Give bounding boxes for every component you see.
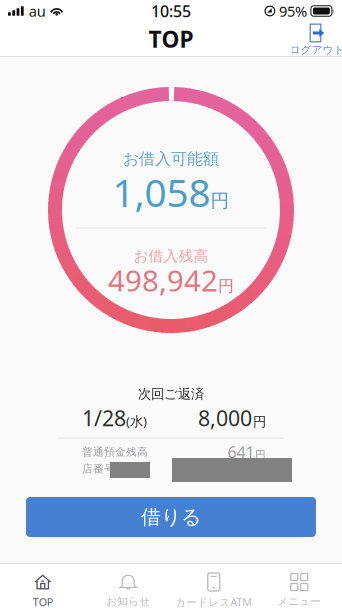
staticText: 円 xyxy=(218,276,234,296)
staticText: お借入可能額 xyxy=(123,149,219,169)
staticText: 円 xyxy=(210,189,229,212)
button[interactable]: メニュー xyxy=(256,574,342,608)
staticText: au xyxy=(29,1,46,21)
staticText: ログアウト xyxy=(289,43,342,56)
staticText: メニュー xyxy=(277,595,321,608)
staticText: 1,058 xyxy=(112,166,210,218)
staticText: 1/28 xyxy=(82,404,126,432)
staticText: お知らせ xyxy=(106,595,150,608)
staticText: TOP xyxy=(148,24,193,54)
staticText: 95% xyxy=(279,1,307,21)
staticText: 円 xyxy=(253,414,266,430)
staticText: 641 xyxy=(227,441,254,463)
staticText: 498,942 xyxy=(108,260,218,299)
staticText: TOP xyxy=(33,595,53,608)
staticText: 普通預金残高 xyxy=(82,445,148,458)
staticText: 8,000 xyxy=(198,404,252,432)
staticText: 店番号 xyxy=(82,462,115,475)
staticText: 10:55 xyxy=(151,0,191,22)
staticText: 円 xyxy=(255,448,266,461)
staticText: お借入残高 xyxy=(133,247,208,265)
staticText: (水) xyxy=(126,412,147,430)
staticText: 次回ご返済 xyxy=(138,386,204,402)
button[interactable]: ログアウト xyxy=(291,23,342,57)
button[interactable]: TOP xyxy=(0,574,85,608)
button[interactable]: お知らせ xyxy=(85,574,171,608)
staticText: 借りる xyxy=(141,505,201,529)
button[interactable]: カードレスATM xyxy=(171,574,256,608)
staticText: カードレスATM xyxy=(175,595,252,608)
button[interactable]: 借りる xyxy=(26,497,316,537)
